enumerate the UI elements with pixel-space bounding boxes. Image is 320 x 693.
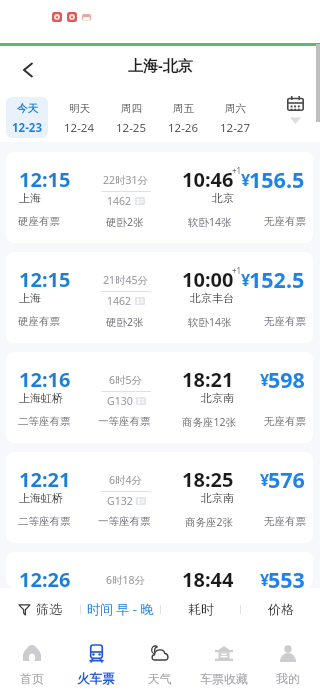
staticText: 商务座12张 <box>182 415 237 429</box>
staticText: ¥ <box>260 469 270 491</box>
staticText: 硬卧2张 <box>106 315 144 329</box>
staticText: 二等座有票 <box>18 515 71 528</box>
staticText: 12:16 <box>19 366 71 393</box>
button[interactable]: 12:16 <box>6 352 313 443</box>
staticText: 598 <box>268 365 305 394</box>
button[interactable]: 时间 早 - 晚 <box>81 588 160 630</box>
staticText: 12-25 <box>116 120 147 136</box>
staticText: 12-23 <box>12 120 42 136</box>
button[interactable]: 首页 <box>0 630 64 693</box>
staticText: 无座有票 <box>264 415 306 428</box>
staticText: 上海-北京 <box>128 55 193 75</box>
staticText: 18:25 <box>182 466 234 493</box>
button[interactable]: 明天 <box>58 97 100 138</box>
staticText: 上海 <box>19 191 41 205</box>
staticText: 22时31分 <box>103 173 149 187</box>
staticText: 北京丰台 <box>190 291 234 305</box>
staticText: 上海虹桥 <box>19 391 63 405</box>
staticText: ¥ <box>260 369 270 391</box>
staticText: +1 <box>232 265 242 276</box>
button[interactable]: 12:15 <box>6 152 313 243</box>
staticText: 明天 <box>69 102 90 115</box>
staticText: 上海 <box>19 291 41 305</box>
button[interactable]: 我的 <box>256 630 320 693</box>
staticText: 无座有票 <box>264 515 306 528</box>
staticText: 北京南 <box>201 491 234 505</box>
button[interactable]: 火车票 <box>64 630 128 693</box>
staticText: 北京 <box>212 191 234 205</box>
button[interactable]: 价格 <box>241 588 320 630</box>
staticText: 12:15 <box>19 166 71 193</box>
staticText: 10:00 <box>182 266 234 293</box>
staticText: 152.5 <box>249 265 305 294</box>
staticText: G130 <box>107 394 133 408</box>
staticText: 天气 <box>148 671 172 686</box>
staticText: 硬座有票 <box>18 215 60 228</box>
staticText: 首页 <box>20 671 44 686</box>
staticText: 12:21 <box>19 466 71 493</box>
staticText: 今天 <box>17 102 38 115</box>
staticText: 软卧14张 <box>188 215 232 229</box>
button[interactable]: 车票收藏 <box>192 630 256 693</box>
staticText: 二等座有票 <box>18 415 71 428</box>
staticText: 21时45分 <box>103 273 149 287</box>
staticText: ¥ <box>241 269 251 291</box>
button[interactable]: 12:15 <box>6 252 313 343</box>
staticText: 硬卧2张 <box>106 215 144 229</box>
staticText: 火车票 <box>77 671 115 687</box>
staticText: 车票收藏 <box>200 671 248 686</box>
staticText: ¥ <box>260 569 270 588</box>
staticText: 12-24 <box>64 120 95 136</box>
staticText: 硬座有票 <box>18 315 60 328</box>
staticText: 筛选 <box>36 601 62 617</box>
staticText: 12:26 <box>19 566 71 588</box>
staticText: 时间 早 - 晚 <box>87 600 154 618</box>
staticText: 无座有票 <box>264 315 306 328</box>
staticText: 6时5分 <box>109 373 143 387</box>
staticText: G132 <box>107 494 133 508</box>
staticText: 12:15 <box>19 266 71 293</box>
button[interactable]: 天气 <box>128 630 192 693</box>
staticText: 12-26 <box>168 120 199 136</box>
button[interactable]: 今天 <box>6 97 48 138</box>
staticText: 周四 <box>121 102 142 115</box>
staticText: 无座有票 <box>264 215 306 228</box>
staticText: 价格 <box>268 601 294 617</box>
staticText: 1462 <box>107 294 132 308</box>
staticText: 耗时 <box>188 601 214 617</box>
staticText: 一等座有票 <box>98 515 151 528</box>
staticText: 商务座2张 <box>185 515 234 529</box>
staticText: 周六 <box>225 102 246 115</box>
staticText: 6时18分 <box>106 573 146 587</box>
staticText: 12-27 <box>220 120 251 136</box>
button[interactable]: 周四 <box>110 97 152 138</box>
staticText: 10:46 <box>182 166 234 193</box>
staticText: ¥ <box>241 169 251 191</box>
button[interactable]: 耗时 <box>161 588 240 630</box>
staticText: 576 <box>268 465 305 494</box>
button[interactable]: Calendar <box>262 86 320 142</box>
button[interactable]: 12:26 <box>6 552 313 588</box>
staticText: 1462 <box>107 194 132 208</box>
staticText: 6时4分 <box>109 473 143 487</box>
button[interactable]: 周五 <box>162 97 204 138</box>
staticText: 周五 <box>173 102 194 115</box>
button[interactable]: 筛选 <box>0 588 80 630</box>
staticText: 18:44 <box>182 566 234 588</box>
staticText: 北京南 <box>201 391 234 405</box>
staticText: 我的 <box>276 671 300 686</box>
staticText: 553 <box>268 565 305 588</box>
button[interactable]: 12:21 <box>6 452 313 543</box>
staticText: 一等座有票 <box>98 415 151 428</box>
button[interactable]: 周六 <box>214 97 256 138</box>
staticText: 上海虹桥 <box>19 491 63 505</box>
staticText: 软卧14张 <box>188 315 232 329</box>
button[interactable]: Back <box>8 52 40 84</box>
staticText: +1 <box>232 165 242 176</box>
staticText: 156.5 <box>249 165 305 194</box>
staticText: 18:21 <box>182 366 234 393</box>
